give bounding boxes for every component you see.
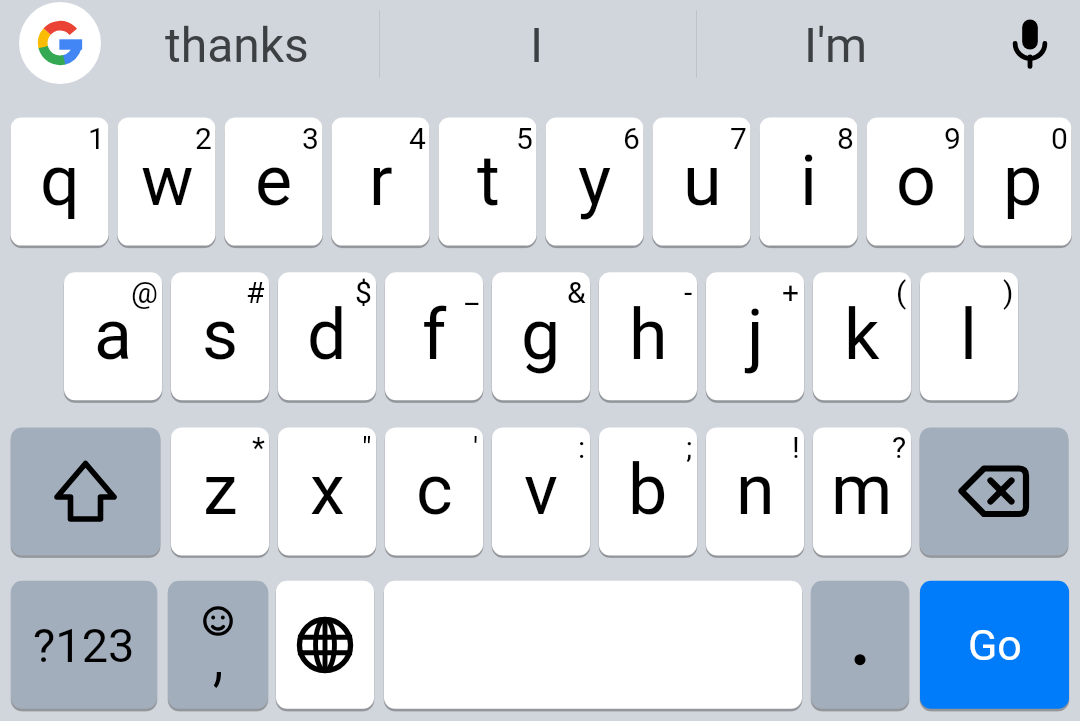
staticText: l (960, 294, 978, 376)
staticText: 4 (409, 121, 426, 156)
button[interactable]: b (599, 427, 697, 555)
staticText: * (252, 430, 265, 465)
staticText: z (203, 449, 238, 531)
button[interactable]: o (867, 118, 965, 246)
button[interactable]: Backspace (920, 427, 1068, 555)
button[interactable]: I (407, 0, 667, 88)
staticText: c (416, 449, 453, 531)
button[interactable]: e (225, 118, 323, 246)
staticText: u (683, 140, 722, 222)
staticText: 6 (623, 121, 640, 156)
staticText: " (362, 430, 372, 465)
staticText: : (578, 430, 586, 465)
staticText: - (684, 275, 693, 310)
button[interactable]: Change language (276, 581, 374, 709)
button[interactable]: h (599, 272, 697, 400)
staticText: 2 (195, 121, 212, 156)
staticText: ' (473, 430, 479, 465)
button[interactable]: x (278, 427, 376, 555)
button[interactable]: p (974, 118, 1072, 246)
staticText: r (369, 140, 393, 222)
staticText: x (310, 449, 345, 531)
button[interactable]: g (492, 272, 590, 400)
button[interactable]: thanks (107, 0, 367, 88)
staticText: ? (892, 430, 907, 465)
staticText: 8 (837, 121, 854, 156)
staticText: 9 (944, 121, 961, 156)
button[interactable]: ?123 (11, 581, 157, 709)
staticText: q (40, 140, 80, 222)
staticText: p (1003, 140, 1043, 222)
button[interactable]: t (439, 118, 537, 246)
staticText: ! (792, 430, 800, 465)
button[interactable]: u (653, 118, 751, 246)
staticText: 0 (1051, 121, 1068, 156)
staticText: ) (1003, 275, 1014, 310)
button[interactable]: r (332, 118, 430, 246)
staticText: v (524, 449, 558, 531)
button[interactable]: w (118, 118, 216, 246)
staticText: n (736, 449, 775, 531)
staticText: & (567, 275, 586, 310)
staticText: 5 (516, 121, 533, 156)
staticText: 1 (88, 121, 105, 156)
staticText: g (521, 294, 561, 376)
staticText: o (896, 140, 936, 222)
button[interactable]: v (492, 427, 590, 555)
staticText: I (530, 17, 544, 73)
button[interactable]: l (920, 272, 1018, 400)
staticText: k (844, 294, 880, 376)
staticText: m (831, 449, 893, 531)
button[interactable]: Voice input (988, 3, 1072, 87)
staticText: # (246, 275, 265, 310)
staticText: ( (896, 275, 907, 310)
staticText: + (782, 275, 800, 310)
staticText: h (629, 294, 668, 376)
staticText: I'm (804, 17, 868, 73)
button[interactable]: z (171, 427, 269, 555)
button[interactable]: I'm (706, 0, 966, 88)
staticText: 7 (730, 121, 747, 156)
button[interactable]: f (385, 272, 483, 400)
staticText: f (422, 294, 447, 376)
button[interactable]: j (706, 272, 804, 400)
button[interactable]: c (385, 427, 483, 555)
staticText: w (141, 140, 194, 222)
button[interactable]: q (11, 118, 109, 246)
staticText: j (747, 294, 764, 376)
staticText: e (255, 140, 293, 222)
staticText: y (578, 140, 612, 222)
button[interactable]: a (64, 272, 162, 400)
button[interactable]: Shift (11, 427, 160, 555)
button[interactable]: n (706, 427, 804, 555)
staticText: i (800, 140, 818, 222)
staticText: s (202, 294, 239, 376)
button[interactable]: Space (384, 581, 802, 709)
button[interactable]: s (171, 272, 269, 400)
staticText: $ (355, 275, 372, 310)
staticText: d (307, 294, 347, 376)
staticText: t (477, 140, 500, 222)
staticText: _ (465, 275, 479, 310)
staticText: b (628, 449, 668, 531)
staticText: thanks (165, 17, 309, 73)
staticText: ; (686, 430, 693, 465)
button[interactable]: d (278, 272, 376, 400)
staticText: ?123 (33, 618, 135, 673)
button[interactable]: m (813, 427, 911, 555)
staticText: @ (131, 275, 158, 310)
button[interactable]: Go (920, 581, 1069, 709)
button[interactable]: Emoji (168, 581, 268, 709)
staticText: Go (968, 620, 1022, 670)
staticText: 3 (302, 121, 319, 156)
staticText: a (94, 294, 133, 376)
button[interactable]: k (813, 272, 911, 400)
button[interactable]: Google (19, 2, 101, 84)
button[interactable]: i (760, 118, 858, 246)
button[interactable]: y (546, 118, 644, 246)
button[interactable]: Period (811, 581, 909, 709)
